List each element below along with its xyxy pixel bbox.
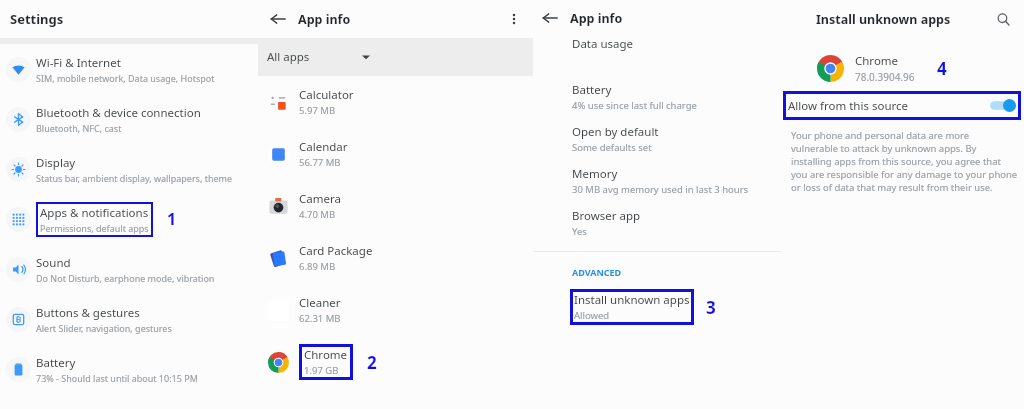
button[interactable]: Display	[0, 144, 258, 194]
button[interactable]: Apps & notifications	[0, 194, 258, 244]
staticText: Card Package	[299, 243, 373, 259]
staticText: Battery	[36, 355, 76, 371]
button[interactable]: Allow from this source	[788, 91, 1016, 120]
staticText: Alert Slider, navigation, gestures	[36, 322, 172, 334]
button[interactable]: Calculator	[258, 76, 533, 128]
staticText: Cleaner	[299, 295, 341, 311]
button[interactable]: Sound	[0, 244, 258, 294]
button[interactable]: Wi-Fi & Internet	[0, 44, 258, 94]
button[interactable]: Open by default	[533, 124, 781, 154]
staticText: Install unknown apps	[816, 11, 951, 28]
staticText: Status bar, ambient display, wallpapers,…	[36, 172, 233, 184]
staticText: Permissions, default apps	[40, 222, 149, 234]
button[interactable]: All apps	[258, 38, 533, 76]
staticText: Camera	[299, 191, 341, 207]
staticText: Browser app	[572, 208, 641, 224]
button[interactable]: Buttons & gestures	[0, 294, 258, 344]
staticText: 2	[367, 351, 377, 374]
staticText: Chrome	[855, 53, 899, 69]
staticText: App info	[298, 11, 351, 28]
staticText: Wi-Fi & Internet	[36, 55, 121, 71]
button[interactable]: Memory	[533, 166, 781, 196]
staticText: Do Not Disturb, earphone mode, vibration	[36, 272, 215, 284]
staticText: Sound	[36, 255, 71, 271]
staticText: 6.89 MB	[299, 260, 336, 273]
staticText: 73% - Should last until about 10:15 PM	[36, 372, 198, 384]
button[interactable]: Search	[990, 6, 1016, 32]
staticText: Calculator	[299, 87, 354, 103]
staticText: Install unknown apps	[574, 292, 690, 308]
staticText: Bluetooth & device connection	[36, 105, 201, 121]
staticText: Memory	[572, 166, 618, 182]
staticText: Chrome	[304, 347, 348, 363]
staticText: 5.97 MB	[299, 104, 336, 117]
staticText: App info	[570, 10, 623, 27]
button[interactable]: More options	[501, 6, 527, 32]
staticText: 56.77 MB	[299, 156, 341, 169]
staticText: Open by default	[572, 124, 659, 140]
staticText: 30 MB avg memory used in last 3 hours	[572, 183, 749, 196]
staticText: Some defaults set	[572, 141, 652, 154]
button[interactable]: Cleaner	[258, 284, 533, 336]
button[interactable]: Back	[264, 5, 292, 33]
staticText: Allow from this source	[788, 98, 990, 114]
staticText: Battery	[572, 82, 612, 98]
staticText: 4.70 MB	[299, 208, 336, 221]
staticText: Settings	[10, 10, 64, 28]
staticText: 1.97 GB	[304, 364, 339, 377]
button[interactable]: Battery	[533, 82, 781, 112]
button[interactable]: Card Package	[258, 232, 533, 284]
staticText: 4% use since last full charge	[572, 99, 697, 112]
staticText: ADVANCED	[572, 266, 622, 278]
staticText: Allowed	[574, 309, 610, 322]
button[interactable]: Battery	[0, 344, 258, 394]
button[interactable]: Chrome	[258, 336, 533, 388]
button[interactable]: Camera	[258, 180, 533, 232]
staticText: Your phone and personal data are more vu…	[791, 129, 1018, 194]
staticText: Display	[36, 155, 76, 171]
staticText: 4	[937, 57, 947, 80]
staticText: Bluetooth, NFC, cast	[36, 122, 122, 134]
staticText: Data usage	[572, 36, 634, 52]
button[interactable]: Back	[536, 4, 564, 32]
staticText: Buttons & gestures	[36, 305, 140, 321]
button[interactable]: Calendar	[258, 128, 533, 180]
staticText: 62.31 MB	[299, 312, 341, 325]
staticText: SIM, mobile network, Data usage, Hotspot	[36, 72, 215, 84]
staticText: 3	[706, 296, 716, 319]
button[interactable]: Data usage	[533, 36, 781, 58]
staticText: 78.0.3904.96	[855, 70, 915, 84]
staticText: Apps & notifications	[40, 205, 149, 221]
button[interactable]: Bluetooth & device connection	[0, 94, 258, 144]
button[interactable]: Install unknown apps	[533, 289, 781, 325]
staticText: Calendar	[299, 139, 348, 155]
staticText: All apps	[267, 49, 310, 65]
staticText: 1	[167, 208, 177, 230]
staticText: Yes	[572, 225, 587, 238]
button[interactable]: Browser app	[533, 208, 781, 238]
